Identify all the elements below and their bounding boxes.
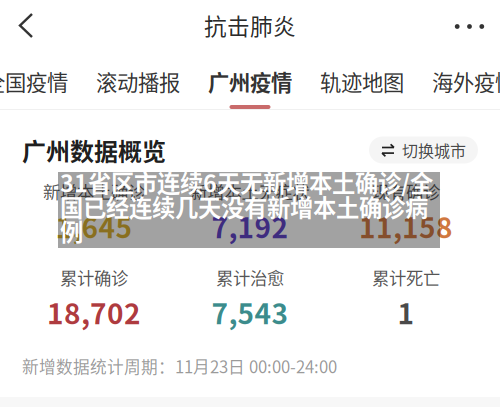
button[interactable]: 切换城市	[369, 136, 478, 163]
staticText: 18,702	[47, 292, 141, 332]
staticText: 轨迹地图	[320, 66, 404, 97]
staticText: 新增本土确诊	[43, 179, 145, 204]
staticText: 累计治愈	[216, 265, 284, 290]
button[interactable]: 滚动播报	[82, 53, 194, 109]
staticText: 广州疫情	[208, 66, 292, 97]
staticText: 1,645	[55, 206, 132, 246]
button[interactable]: 广州疫情	[194, 53, 306, 109]
button[interactable]: 全国疫情	[0, 53, 82, 109]
staticText: 全国疫情	[0, 66, 68, 97]
staticText: 新增本土无症状	[190, 179, 309, 204]
button[interactable]: Back	[0, 0, 52, 53]
button[interactable]: 轨迹地图	[306, 53, 418, 109]
staticText: 广州数据概览	[22, 133, 166, 167]
staticText: 切换城市	[402, 138, 466, 162]
staticText: 31省区市连续6天无新增本土确诊/全国已经连续几天没有新增本土确诊病例	[60, 170, 433, 243]
staticText: 累计确诊	[60, 265, 128, 290]
staticText: 现有确诊	[372, 179, 440, 204]
button[interactable]: More options	[439, 0, 500, 53]
staticText: 7,192	[211, 206, 288, 246]
staticText: 7,543	[211, 292, 288, 332]
staticText: 1	[397, 292, 414, 332]
staticText: 滚动播报	[96, 66, 180, 97]
staticText: 抗击肺炎	[204, 9, 296, 41]
staticText: 海外疫情	[432, 66, 500, 97]
staticText: 新增数据统计周期：11月23日 00:00-24:00	[22, 354, 337, 378]
staticText: 11,158	[359, 206, 453, 246]
button[interactable]: 海外疫情	[418, 53, 500, 109]
staticText: 累计死亡	[372, 265, 440, 290]
